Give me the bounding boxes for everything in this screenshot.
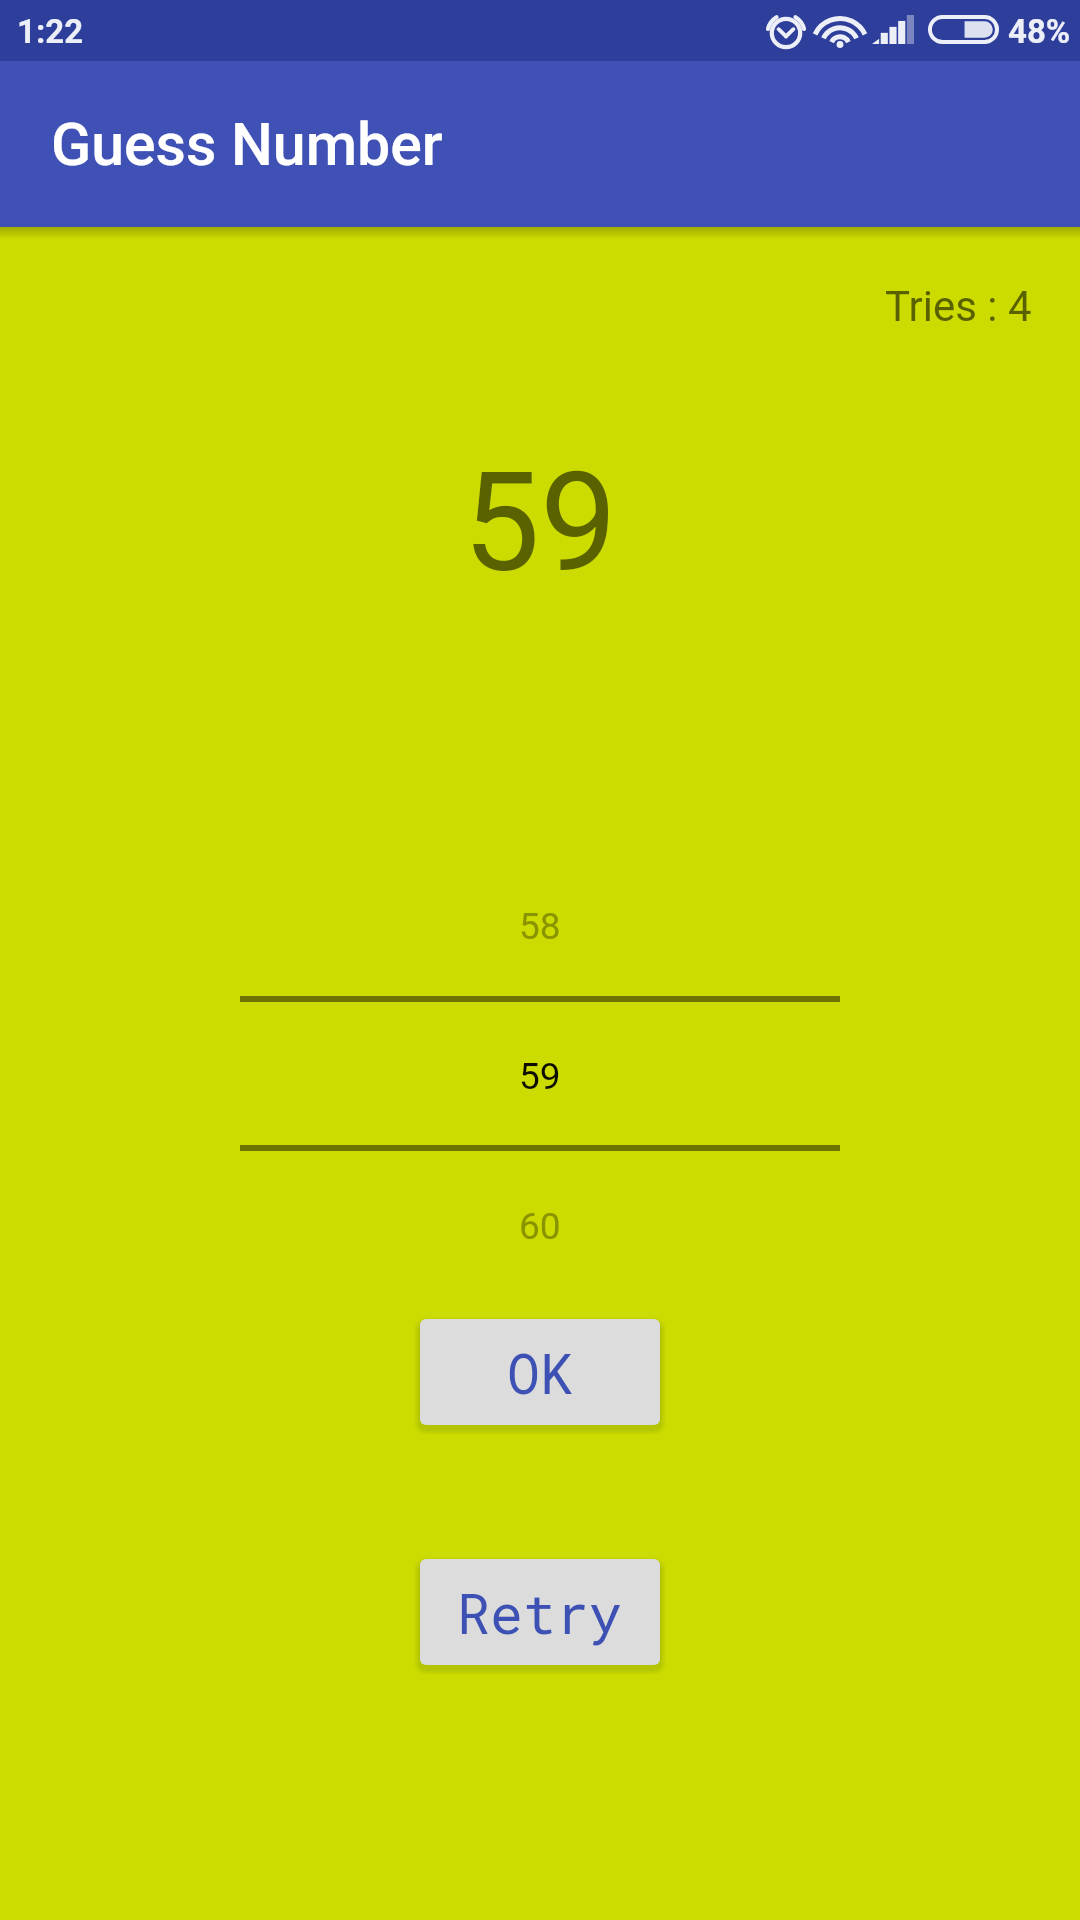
staticText: Guess Number xyxy=(51,110,443,179)
button[interactable]: OK xyxy=(420,1319,660,1425)
staticText: Retry xyxy=(457,1576,623,1649)
button[interactable]: 59 xyxy=(240,1002,840,1150)
staticText: 48% xyxy=(1008,12,1071,51)
other: Signal xyxy=(872,15,914,44)
staticText: 58 xyxy=(519,905,561,948)
button[interactable]: Retry xyxy=(420,1559,660,1665)
other: Alarm xyxy=(766,11,806,49)
other: Battery xyxy=(928,15,999,44)
other: Wi-Fi xyxy=(816,14,864,46)
staticText: 59 xyxy=(519,1055,561,1098)
staticText: 1:22 xyxy=(17,12,84,51)
staticText: Tries : 4 xyxy=(885,282,1032,331)
staticText: 59 xyxy=(463,443,617,604)
staticText: OK xyxy=(507,1336,574,1409)
button[interactable]: 58 xyxy=(240,852,840,1000)
staticText: 60 xyxy=(519,1205,561,1248)
button[interactable]: 60 xyxy=(240,1152,840,1300)
